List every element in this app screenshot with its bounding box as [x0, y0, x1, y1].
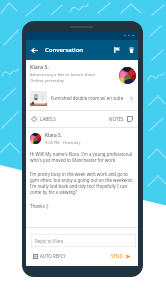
staticText: AUTO REPLY [40, 253, 66, 259]
button[interactable]: LABELS [26, 116, 109, 122]
staticText: 9:24 PM · Yesterday [45, 140, 81, 145]
button[interactable]: AUTO REPLY [33, 253, 66, 259]
button[interactable]: Klara S. [26, 61, 138, 87]
staticText: Conversation [45, 46, 84, 54]
button[interactable]: Reply to Klara [31, 234, 136, 247]
staticText: Reply to Klara [35, 238, 64, 244]
button[interactable]: Flag conversation [110, 40, 124, 60]
staticText: Hi Will! My name's Klara. I'm a young pr… [30, 151, 135, 163]
button[interactable]: SEND [111, 253, 131, 259]
button[interactable]: Furnished double room w/ en suite [26, 87, 138, 109]
staticText: NOTES [109, 116, 124, 122]
staticText: I'm pretty busy in the week with work an… [30, 171, 135, 195]
staticText: SEND [111, 253, 123, 259]
button[interactable]: Delete conversation [124, 40, 138, 60]
staticText: Klara S. [30, 63, 50, 70]
staticText: Klara S. [45, 132, 62, 139]
staticText: Furnished double room w/ en suite [51, 95, 129, 101]
staticText: LABELS [40, 116, 56, 122]
staticText: Advertising a flat or house share [30, 71, 96, 77]
staticText: Thanks :) [30, 203, 49, 209]
staticText: Online yesterday [30, 77, 65, 83]
other: Open listing [129, 96, 134, 101]
button[interactable]: NOTES [109, 116, 138, 122]
button[interactable]: Back [26, 40, 42, 60]
